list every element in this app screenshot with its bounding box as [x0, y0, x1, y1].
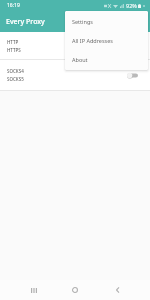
button[interactable]: Settings [65, 12, 148, 31]
staticText: 92% [126, 2, 137, 9]
button[interactable]: Back [104, 283, 130, 297]
staticText: SOCKS4 [7, 68, 24, 74]
staticText: Every Proxy [6, 17, 45, 27]
button[interactable]: Toggle SOCKS4 [127, 71, 138, 80]
staticText: 16:19 [7, 2, 20, 9]
staticText: About [72, 56, 88, 63]
button[interactable]: About [65, 50, 148, 69]
button[interactable]: SOCKS4 [0, 60, 150, 90]
button[interactable]: HTTP [0, 32, 150, 59]
staticText: SOCKS5 [7, 76, 24, 82]
button[interactable]: All IP Addresses [65, 31, 148, 50]
staticText: Settings [72, 18, 93, 25]
staticText: HTTPS [7, 47, 21, 53]
staticText: HTTP [7, 39, 19, 45]
button[interactable]: Home [62, 283, 88, 297]
staticText: All IP Addresses [72, 37, 113, 44]
button[interactable]: Recent apps [21, 283, 47, 297]
